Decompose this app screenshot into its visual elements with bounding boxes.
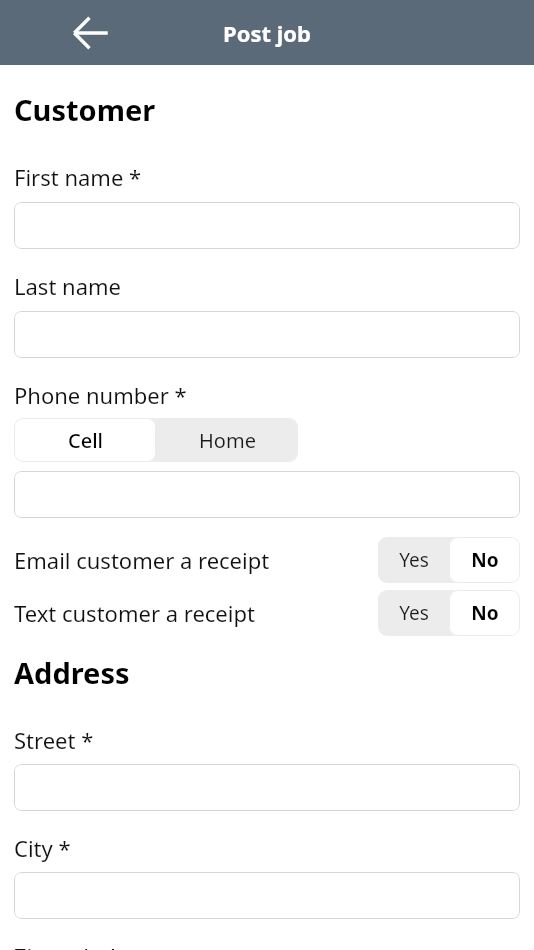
button[interactable] xyxy=(14,471,520,518)
staticText: Last name xyxy=(14,271,121,301)
staticText: Post job xyxy=(223,18,311,48)
button[interactable]: Cell xyxy=(14,418,156,462)
button[interactable] xyxy=(14,872,520,919)
button[interactable]: No xyxy=(449,590,520,636)
staticText: City * xyxy=(14,833,71,863)
staticText: Address xyxy=(14,653,130,692)
staticText: Zip code * xyxy=(14,941,120,950)
staticText: Email customer a receipt xyxy=(14,545,378,575)
staticText: First name * xyxy=(14,162,142,192)
staticText: Phone number * xyxy=(14,380,187,410)
button[interactable]: Yes xyxy=(378,537,449,583)
button[interactable] xyxy=(14,311,520,358)
button[interactable]: Back xyxy=(63,5,119,61)
staticText: Cell xyxy=(68,427,103,454)
staticText: Home xyxy=(199,427,256,454)
button[interactable]: No xyxy=(449,537,520,583)
button[interactable]: Yes xyxy=(378,590,449,636)
staticText: No xyxy=(471,600,499,626)
button[interactable] xyxy=(14,202,520,249)
staticText: Street * xyxy=(14,725,94,755)
button[interactable] xyxy=(14,764,520,811)
staticText: No xyxy=(471,547,499,573)
staticText: Text customer a receipt xyxy=(14,598,378,628)
staticText: Yes xyxy=(399,600,429,626)
button[interactable]: Home xyxy=(156,418,298,462)
staticText: Yes xyxy=(399,547,429,573)
staticText: Customer xyxy=(14,90,156,129)
